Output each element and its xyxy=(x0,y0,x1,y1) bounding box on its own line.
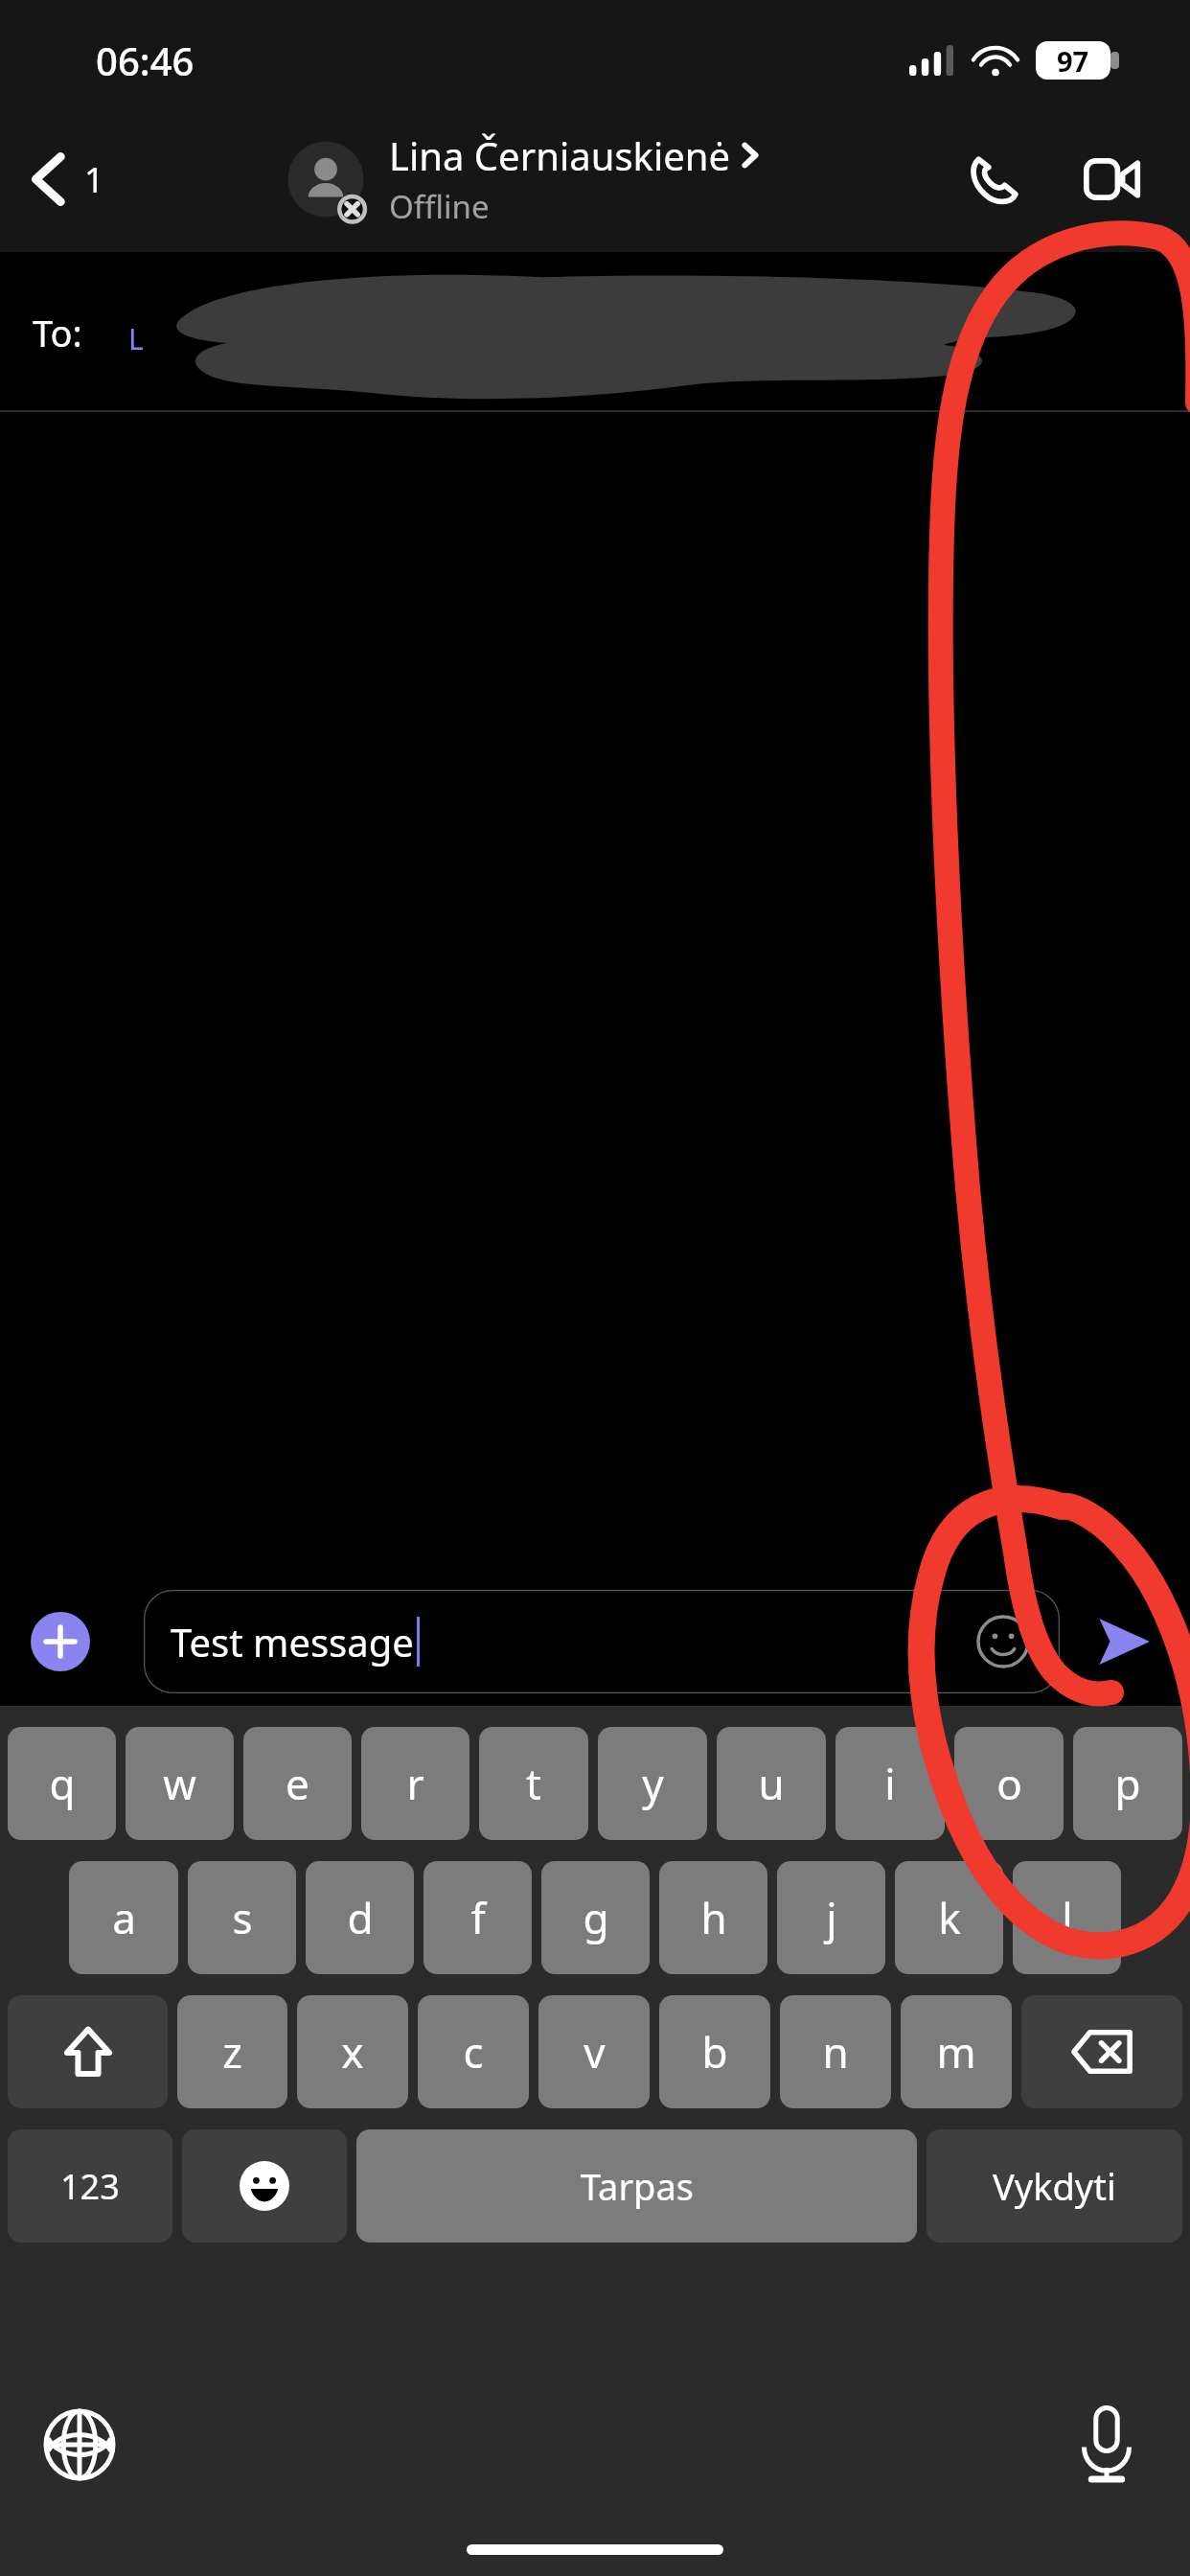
button[interactable]: Test message xyxy=(144,1590,1060,1693)
button[interactable]: n xyxy=(780,1995,891,2108)
button[interactable]: v xyxy=(538,1995,650,2108)
button[interactable]: Tarpas xyxy=(356,2129,917,2242)
button[interactable]: w xyxy=(126,1727,234,1840)
staticText: z xyxy=(222,2023,242,2081)
staticText: y xyxy=(642,1755,664,1812)
staticText: a xyxy=(112,1889,136,1946)
button[interactable]: o xyxy=(954,1727,1064,1840)
button[interactable]: m xyxy=(901,1995,1012,2108)
staticText: 97 xyxy=(1057,42,1089,80)
staticText: l xyxy=(1062,1889,1073,1946)
button[interactable]: p xyxy=(1073,1727,1182,1840)
button[interactable]: q xyxy=(8,1727,116,1840)
staticText: 123 xyxy=(60,2163,120,2210)
button[interactable]: b xyxy=(659,1995,770,2108)
staticText: o xyxy=(996,1755,1022,1812)
button[interactable]: Backspace xyxy=(1021,1995,1182,2108)
staticText: m xyxy=(936,2023,976,2081)
button[interactable]: Add attachment xyxy=(31,1612,90,1671)
button[interactable]: Back xyxy=(0,129,137,229)
button[interactable]: Shift xyxy=(8,1995,168,2108)
button[interactable]: Vykdyti xyxy=(927,2129,1182,2242)
staticText: c xyxy=(463,2023,484,2081)
button[interactable]: j xyxy=(777,1861,885,1974)
button[interactable]: Lina Černiauskienė xyxy=(282,129,758,228)
staticText: Lina Černiauskienė xyxy=(389,129,731,181)
staticText: r xyxy=(406,1755,424,1812)
staticText: v xyxy=(584,2023,606,2081)
staticText: k xyxy=(938,1889,961,1946)
button[interactable]: x xyxy=(297,1995,408,2108)
staticText: L xyxy=(128,319,144,358)
button[interactable]: g xyxy=(541,1861,650,1974)
staticText: q xyxy=(49,1755,76,1812)
button[interactable]: a xyxy=(69,1861,178,1974)
staticText: To: xyxy=(33,308,82,357)
staticText: u xyxy=(758,1755,785,1812)
button[interactable]: l xyxy=(1013,1861,1121,1974)
button[interactable]: Call xyxy=(947,133,1039,225)
button[interactable]: h xyxy=(659,1861,767,1974)
button[interactable]: Change language xyxy=(27,2392,132,2497)
staticText: e xyxy=(286,1755,309,1812)
staticText: Test message xyxy=(171,1616,414,1667)
button[interactable]: k xyxy=(895,1861,1003,1974)
staticText: Vykdyti xyxy=(993,2161,1116,2211)
staticText: 1 xyxy=(84,156,104,203)
staticText: w xyxy=(163,1755,196,1812)
staticText: n xyxy=(822,2023,849,2081)
button[interactable]: u xyxy=(717,1727,826,1840)
button[interactable]: Voice input xyxy=(1054,2392,1159,2497)
staticText: j xyxy=(826,1889,837,1946)
staticText: i xyxy=(884,1755,896,1812)
staticText: x xyxy=(341,2023,364,2081)
button[interactable]: Numbers xyxy=(8,2129,172,2242)
button[interactable]: y xyxy=(598,1727,707,1840)
button[interactable]: d xyxy=(306,1861,414,1974)
button[interactable]: Send xyxy=(1077,1596,1169,1688)
staticText: t xyxy=(526,1755,541,1812)
button[interactable]: c xyxy=(418,1995,529,2108)
staticText: g xyxy=(583,1889,609,1946)
staticText: b xyxy=(701,2023,728,2081)
button[interactable]: f xyxy=(423,1861,532,1974)
button[interactable]: Emoji xyxy=(970,1608,1037,1675)
staticText: h xyxy=(700,1889,727,1946)
staticText: p xyxy=(1114,1755,1141,1812)
button[interactable]: t xyxy=(479,1727,588,1840)
staticText: s xyxy=(232,1889,253,1946)
staticText: d xyxy=(347,1889,374,1946)
staticText: Tarpas xyxy=(581,2161,694,2211)
button[interactable]: s xyxy=(188,1861,296,1974)
button[interactable]: i xyxy=(835,1727,945,1840)
button[interactable]: Video call xyxy=(1065,133,1157,225)
staticText: 06:46 xyxy=(96,34,195,86)
button[interactable]: e xyxy=(243,1727,352,1840)
button[interactable]: r xyxy=(361,1727,469,1840)
button[interactable]: z xyxy=(177,1995,287,2108)
staticText: Offline xyxy=(389,185,490,228)
button[interactable]: Emoji keyboard xyxy=(182,2129,347,2242)
staticText: f xyxy=(470,1889,486,1946)
